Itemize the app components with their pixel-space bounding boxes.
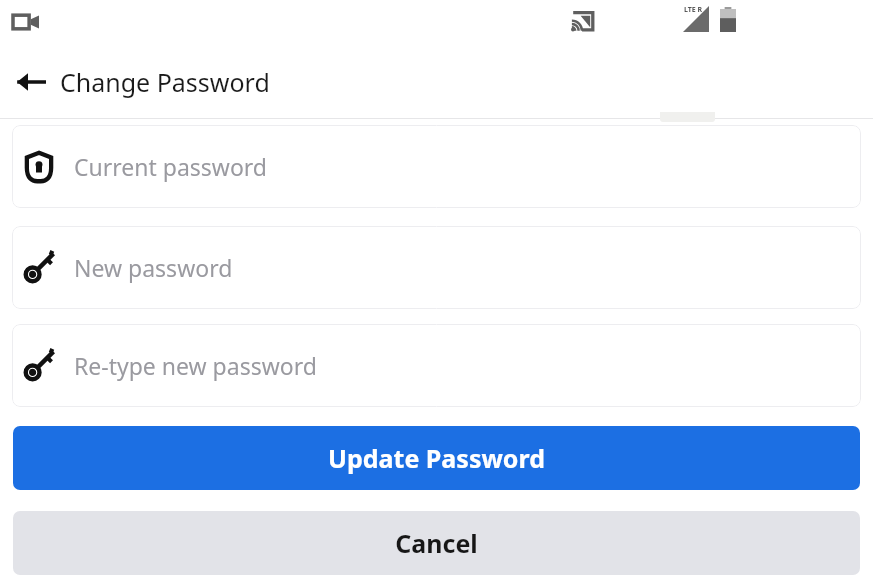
button[interactable]: Cancel xyxy=(13,511,860,575)
staticText: Change Password xyxy=(60,65,270,99)
staticText: Cancel xyxy=(395,526,478,560)
button[interactable]: New password xyxy=(12,226,861,309)
staticText: Re-type new password xyxy=(74,350,317,381)
staticText: New password xyxy=(74,252,233,283)
staticText: Current password xyxy=(74,151,268,182)
staticText: Update Password xyxy=(328,441,545,475)
staticText: LTE R xyxy=(684,5,703,15)
button[interactable]: Current password xyxy=(12,125,861,208)
button[interactable]: Back xyxy=(10,61,52,103)
button[interactable]: Re-type new password xyxy=(12,324,861,407)
button[interactable]: Update Password xyxy=(13,426,860,490)
